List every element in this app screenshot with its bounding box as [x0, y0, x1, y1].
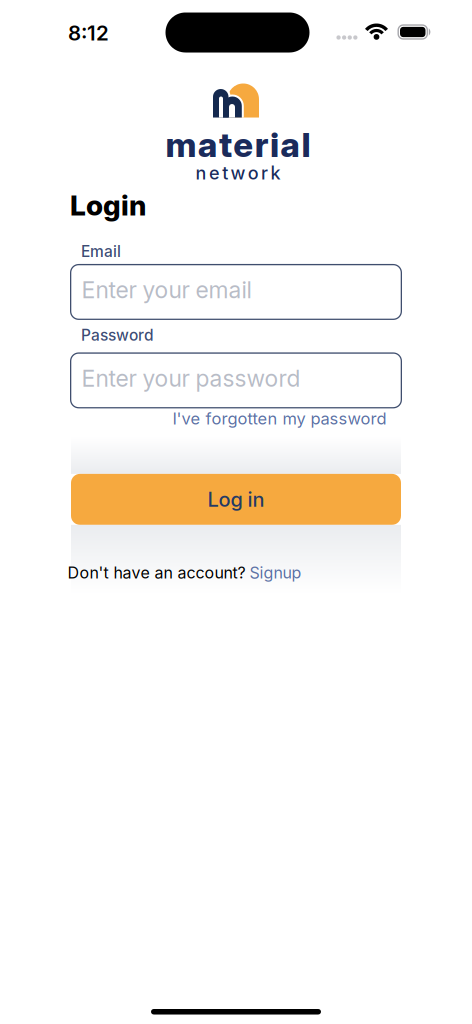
staticText: r [255, 124, 269, 165]
staticText: r [261, 162, 268, 184]
staticText: Email [81, 242, 121, 261]
staticText: t [219, 124, 232, 165]
staticText: o [248, 162, 259, 184]
staticText: w [230, 162, 245, 184]
staticText: Enter your email [81, 276, 251, 304]
staticText: l [301, 124, 310, 165]
staticText: Login [70, 188, 146, 222]
button[interactable]: I've forgotten my password [172, 408, 386, 428]
staticText: Password [81, 326, 154, 345]
staticText: k [270, 162, 280, 184]
staticText: I've forgotten my password [172, 408, 386, 428]
staticText: a [198, 124, 218, 165]
button[interactable]: Log in [71, 474, 401, 525]
staticText: e [233, 124, 253, 165]
staticText: t [222, 162, 228, 184]
staticText: n [196, 162, 207, 184]
button[interactable]: Signup [249, 563, 301, 582]
staticText: e [209, 162, 220, 184]
staticText: Log in [207, 487, 264, 511]
staticText: Enter your password [81, 364, 300, 392]
staticText: 8:12 [68, 21, 109, 45]
staticText: a [280, 124, 300, 165]
staticText: Signup [249, 563, 301, 582]
staticText: i [270, 124, 279, 165]
staticText: Don't have an account? [67, 563, 245, 582]
staticText: m [165, 124, 196, 165]
